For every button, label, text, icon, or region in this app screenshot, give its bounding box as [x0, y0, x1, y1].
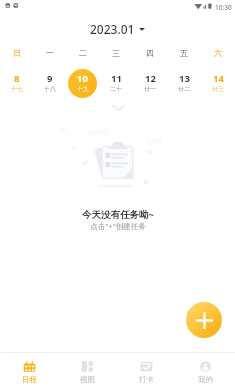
staticText: 二 [79, 48, 87, 58]
button[interactable]: 日程 [0, 353, 58, 390]
staticText: 10:36 [215, 3, 232, 12]
button[interactable]: 12 [133, 62, 167, 101]
staticText: 14 [213, 72, 224, 84]
staticText: 11 [111, 72, 122, 84]
button[interactable]: 打卡 [117, 353, 176, 390]
button[interactable]: 13 [167, 62, 201, 101]
staticText: 2023.01 [90, 21, 135, 37]
staticText: 五 [180, 48, 188, 58]
staticText: 打卡 [139, 375, 154, 384]
button[interactable]: 我的 [176, 353, 235, 390]
staticText: 十九 [77, 85, 89, 93]
button[interactable]: 8 [0, 62, 33, 101]
staticText: 六 [214, 48, 222, 58]
staticText: 廿一 [144, 85, 156, 93]
staticText: 我的 [198, 375, 213, 384]
button[interactable]: 14 [201, 62, 235, 101]
button[interactable]: 9 [33, 62, 66, 101]
staticText: 十七 [11, 85, 23, 93]
staticText: 二十 [110, 85, 122, 93]
staticText: 点击"+"创建任务 [90, 221, 146, 231]
staticText: 廿二 [178, 85, 190, 93]
staticText: 10 [77, 72, 88, 84]
button[interactable]: 视图 [58, 353, 117, 390]
staticText: 12 [145, 72, 156, 84]
staticText: 13 [179, 72, 190, 84]
button[interactable]: 2023.01 [86, 18, 149, 40]
button[interactable]: 10 [66, 62, 99, 101]
staticText: 今天没有任务呦~ [82, 208, 154, 221]
button[interactable]: Expand calendar [98, 101, 138, 115]
staticText: 视图 [80, 375, 95, 384]
staticText: 日程 [22, 375, 37, 384]
button[interactable]: 11 [99, 62, 133, 101]
staticText: 日 [13, 48, 21, 58]
staticText: 三 [112, 48, 120, 58]
staticText: 四 [146, 48, 154, 58]
staticText: 8 [14, 72, 20, 84]
staticText: 一 [46, 48, 54, 58]
button[interactable]: Add task [186, 302, 222, 338]
staticText: 9 [47, 72, 53, 84]
staticText: 十八 [44, 85, 56, 93]
staticText: 廿三 [212, 85, 224, 93]
